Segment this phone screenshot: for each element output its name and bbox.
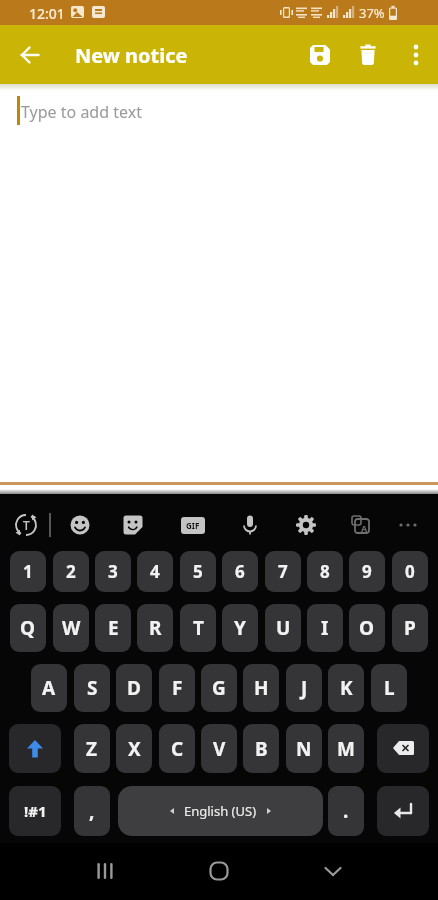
button[interactable]: A	[31, 664, 67, 712]
button[interactable]: 1	[10, 551, 46, 592]
staticText: .	[343, 798, 349, 824]
button[interactable]: S	[74, 664, 110, 712]
staticText: R	[149, 615, 162, 641]
button[interactable]: V	[201, 724, 237, 773]
button[interactable]: D	[116, 664, 152, 712]
button[interactable]	[232, 507, 268, 543]
staticText: 2	[66, 560, 76, 583]
staticText: 37%	[359, 4, 385, 22]
staticText: U	[276, 615, 291, 641]
button[interactable]: M	[328, 724, 364, 773]
button[interactable]: 2	[53, 551, 89, 592]
button[interactable]: 6	[222, 551, 258, 592]
staticText: 0	[405, 560, 415, 583]
staticText: T	[193, 615, 204, 641]
button[interactable]	[115, 507, 151, 543]
button[interactable]: K	[328, 664, 364, 712]
button[interactable]: H	[243, 664, 279, 712]
button[interactable]: J	[286, 664, 322, 712]
staticText: H	[254, 675, 269, 701]
staticText: A	[361, 522, 368, 534]
staticText: X	[128, 736, 141, 762]
staticText: P	[404, 615, 416, 641]
button[interactable]	[346, 33, 390, 77]
button[interactable]: G	[201, 664, 237, 712]
button[interactable]: N	[286, 724, 322, 773]
button[interactable]	[62, 507, 98, 543]
button[interactable]: 7	[265, 551, 301, 592]
staticText: Type to add text	[21, 101, 142, 123]
button[interactable]	[377, 724, 429, 773]
button[interactable]: .	[328, 786, 364, 836]
staticText: K	[340, 675, 353, 701]
button[interactable]: C	[159, 724, 195, 773]
button[interactable]: O	[349, 604, 385, 652]
staticText: Q	[20, 615, 36, 641]
button[interactable]: Y	[222, 604, 258, 652]
staticText: 7	[278, 560, 288, 583]
staticText: W	[62, 615, 81, 641]
staticText: F	[172, 675, 183, 701]
button[interactable]	[83, 849, 127, 893]
button[interactable]: 4	[137, 551, 173, 592]
button[interactable]: Z	[74, 724, 110, 773]
staticText: A	[42, 675, 56, 701]
staticText: GIF	[186, 520, 200, 531]
button[interactable]	[9, 724, 61, 773]
staticText: I	[321, 615, 329, 641]
button[interactable]: T	[180, 604, 216, 652]
staticText: New notice	[75, 42, 188, 69]
staticText: !#1	[24, 801, 47, 821]
button[interactable]: I	[307, 604, 343, 652]
button[interactable]	[8, 33, 52, 77]
staticText: 9	[362, 560, 372, 583]
button[interactable]: L	[371, 664, 407, 712]
staticText: S	[87, 675, 98, 701]
staticText: 5	[193, 560, 203, 583]
button[interactable]: F	[159, 664, 195, 712]
staticText: G	[212, 675, 226, 701]
button[interactable]	[377, 786, 429, 836]
button[interactable]: R	[137, 604, 173, 652]
button[interactable]	[298, 33, 342, 77]
button[interactable]	[394, 33, 438, 77]
staticText: 8	[320, 560, 330, 583]
button[interactable]: 5	[180, 551, 216, 592]
button[interactable]: English (US)	[118, 786, 323, 836]
button[interactable]: Q	[10, 604, 46, 652]
button[interactable]: P	[392, 604, 428, 652]
staticText: C	[171, 736, 184, 762]
staticText: J	[301, 675, 308, 701]
button[interactable]	[390, 507, 426, 543]
staticText: N	[296, 736, 312, 762]
staticText: D	[127, 675, 141, 701]
button[interactable]: 8	[307, 551, 343, 592]
staticText: T	[23, 517, 30, 533]
staticText: English (US)	[184, 802, 257, 820]
button[interactable]: 9	[349, 551, 385, 592]
button[interactable]: E	[95, 604, 131, 652]
button[interactable]	[197, 849, 241, 893]
button[interactable]: A	[343, 507, 379, 543]
button[interactable]: X	[116, 724, 152, 773]
button[interactable]: 3	[95, 551, 131, 592]
button[interactable]: W	[53, 604, 89, 652]
button[interactable]	[311, 849, 355, 893]
button[interactable]: GIF	[175, 507, 211, 543]
staticText: 6	[235, 560, 245, 583]
staticText: V	[213, 736, 226, 762]
staticText: 12:01	[29, 4, 65, 23]
button[interactable]: ,	[74, 786, 110, 836]
staticText: B	[255, 736, 268, 762]
button[interactable]: B	[243, 724, 279, 773]
button[interactable]: T	[8, 507, 44, 543]
staticText: 4	[150, 560, 160, 583]
button[interactable]	[288, 507, 324, 543]
staticText: 3	[108, 560, 118, 583]
staticText: M	[337, 736, 355, 762]
button[interactable]: U	[265, 604, 301, 652]
staticText: L	[384, 675, 395, 701]
button[interactable]: 0	[392, 551, 428, 592]
button[interactable]: !#1	[9, 786, 61, 836]
staticText: 1	[23, 560, 33, 583]
